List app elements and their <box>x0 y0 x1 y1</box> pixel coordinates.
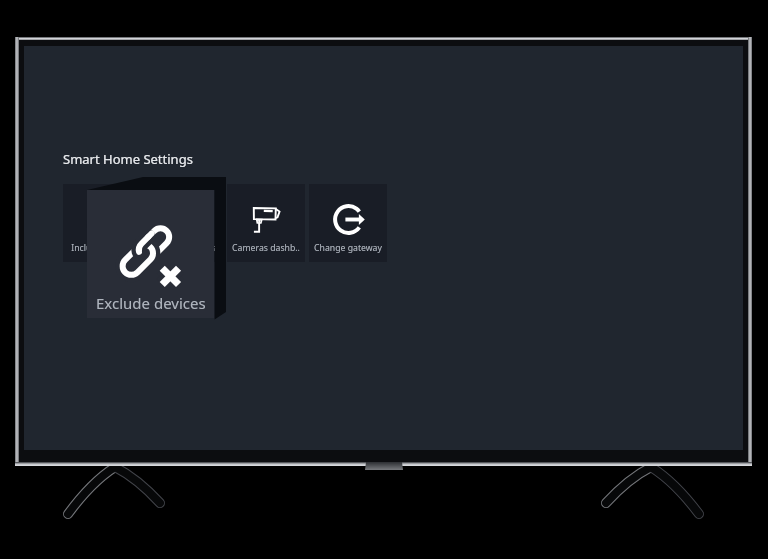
staticText: Include devices <box>71 242 134 254</box>
button[interactable]: Include devices <box>63 184 141 262</box>
staticText: Cameras dashb.. <box>232 242 300 254</box>
staticText: Change gateway <box>314 242 382 254</box>
button[interactable]: Change gateway <box>309 184 387 262</box>
staticText: Exclude devices <box>96 293 206 313</box>
button[interactable]: Exclude devices <box>87 190 214 318</box>
button[interactable]: Exclude devices <box>145 184 223 262</box>
button[interactable]: Cameras dashboard <box>227 184 305 262</box>
staticText: Smart Home Settings <box>63 150 193 168</box>
staticText: Exclude devices <box>152 242 216 254</box>
